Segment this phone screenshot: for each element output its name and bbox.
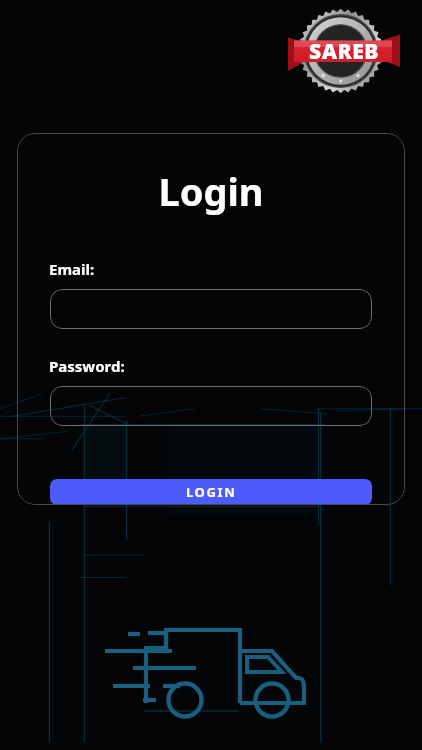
button[interactable] <box>50 289 372 329</box>
button[interactable] <box>50 386 372 426</box>
staticText: SAREB <box>288 37 400 66</box>
staticText: Email: <box>49 259 95 279</box>
staticText: Login <box>17 165 405 217</box>
staticText: LOGIN <box>186 483 237 501</box>
staticText: Password: <box>49 356 125 376</box>
button[interactable]: LOGIN <box>50 479 372 505</box>
